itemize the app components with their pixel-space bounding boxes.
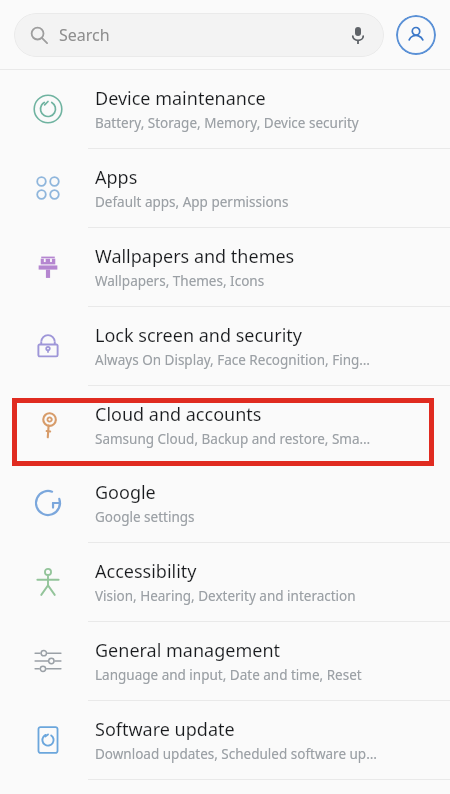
staticText: Apps	[95, 165, 138, 190]
staticText: Wallpapers, Themes, Icons	[95, 272, 265, 290]
button[interactable]: Accessibility	[0, 543, 450, 621]
staticText: Google	[95, 480, 156, 505]
staticText: Default apps, App permissions	[95, 193, 289, 211]
staticText: Search	[59, 24, 110, 46]
button[interactable]: Wallpapers and themes	[0, 228, 450, 306]
button[interactable]: Apps	[0, 149, 450, 227]
button[interactable]: Cloud and accounts	[0, 386, 450, 464]
staticText: Lock screen and security	[95, 323, 302, 348]
button[interactable]: Lock screen and security	[0, 307, 450, 385]
staticText: Wallpapers and themes	[95, 244, 295, 269]
staticText: Software update	[95, 717, 235, 742]
staticText: Language and input, Date and time, Reset	[95, 666, 362, 684]
staticText: Vision, Hearing, Dexterity and interacti…	[95, 587, 356, 605]
staticText: Battery, Storage, Memory, Device securit…	[95, 114, 359, 132]
button[interactable]: Search	[14, 13, 384, 57]
button[interactable]: Software update	[0, 701, 450, 779]
staticText: General management	[95, 638, 281, 663]
staticText: Accessibility	[95, 559, 197, 584]
staticText: Google settings	[95, 508, 195, 526]
button[interactable]: General management	[0, 622, 450, 700]
staticText: Cloud and accounts	[95, 402, 262, 427]
button[interactable]: Device maintenance	[0, 70, 450, 148]
button[interactable]: Account	[396, 15, 436, 55]
button[interactable]: Voice search	[348, 25, 368, 45]
button[interactable]: Google	[0, 464, 450, 542]
staticText: Samsung Cloud, Backup and restore, Sma…	[95, 430, 371, 448]
staticText: Device maintenance	[95, 86, 266, 111]
staticText: Download updates, Scheduled software up…	[95, 745, 377, 763]
staticText: Always On Display, Face Recognition, Fin…	[95, 351, 370, 369]
